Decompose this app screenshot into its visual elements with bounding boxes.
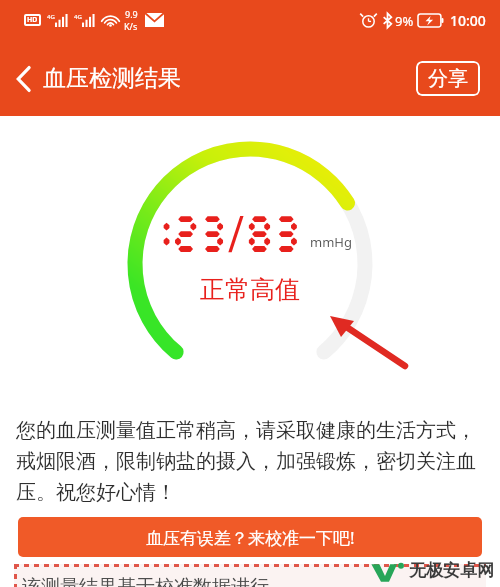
staticText: 4G xyxy=(74,13,82,21)
staticText: 9.9 xyxy=(125,8,138,20)
staticText: 血压检测结果 xyxy=(43,64,181,93)
staticText: mmHg xyxy=(310,233,352,251)
button[interactable]: Back xyxy=(0,56,191,101)
staticText: HD xyxy=(27,15,38,25)
staticText: 4G xyxy=(47,13,55,21)
staticText: 9% xyxy=(395,12,414,30)
staticText: 该测量结果基于校准数据进行 ... xyxy=(22,573,290,587)
staticText: 分享 xyxy=(428,66,468,91)
staticText: 10:00 xyxy=(450,11,486,30)
button[interactable]: 分享 xyxy=(416,61,480,96)
other: Back xyxy=(16,66,32,92)
button[interactable]: 血压有误差？来校准一下吧! xyxy=(18,517,482,557)
staticText: 您的血压测量值正常稍高，请采取健康的生活方式，戒烟限酒，限制钠盐的摄入，加强锻炼… xyxy=(16,418,486,505)
staticText: 血压有误差？来校准一下吧! xyxy=(146,526,355,549)
staticText: K/s xyxy=(124,20,138,32)
staticText: 无极安卓网 xyxy=(409,560,494,581)
staticText: 正常高值 xyxy=(200,274,300,305)
